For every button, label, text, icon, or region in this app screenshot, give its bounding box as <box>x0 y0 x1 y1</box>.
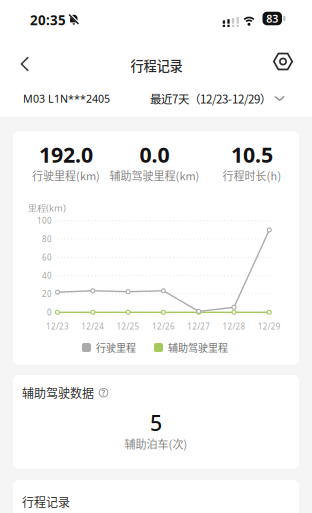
staticText: 0.0 <box>139 140 169 169</box>
button[interactable] <box>16 54 36 74</box>
staticText: 100 <box>37 215 52 226</box>
button[interactable] <box>271 49 295 73</box>
staticText: ? <box>101 387 105 398</box>
staticText: 里程(km) <box>28 202 66 214</box>
staticText: 12/28 <box>222 321 245 332</box>
staticText: 12/23 <box>46 321 69 332</box>
staticText: 辅助驾驶数据 <box>22 384 94 401</box>
staticText: 83 <box>266 11 278 26</box>
staticText: 20:35 <box>30 11 66 29</box>
button[interactable]: M03 L1N***2405 <box>23 91 110 106</box>
staticText: 行程记录 <box>130 56 182 75</box>
staticText: 12/26 <box>152 321 175 332</box>
staticText: 80 <box>42 234 52 244</box>
staticText: 行程时长(h) <box>222 167 281 183</box>
staticText: 0 <box>47 307 52 318</box>
staticText: 行驶里程(km) <box>32 167 100 183</box>
staticText: 行程记录 <box>22 493 70 510</box>
staticText: 12/29 <box>258 321 281 332</box>
staticText: 最近7天（12/23-12/29） <box>150 90 271 107</box>
button[interactable]: ? <box>98 387 109 398</box>
staticText: 192.0 <box>39 140 93 169</box>
staticText: 辅助驾驶里程 <box>168 340 228 355</box>
staticText: 10.5 <box>231 140 273 169</box>
staticText: 60 <box>42 252 52 263</box>
button[interactable]: 最近7天（12/23-12/29） <box>150 90 285 107</box>
staticText: 20 <box>42 289 52 299</box>
staticText: 辅助驾驶里程(km) <box>109 167 199 183</box>
staticText: 12/25 <box>117 321 140 332</box>
staticText: 行驶里程 <box>96 340 136 355</box>
staticText: 40 <box>42 270 52 281</box>
staticText: M03 L1N***2405 <box>23 91 110 106</box>
staticText: 12/27 <box>187 321 210 332</box>
staticText: 5 <box>150 408 162 437</box>
staticText: 辅助泊车(次) <box>124 436 187 452</box>
staticText: 12/24 <box>81 321 104 332</box>
